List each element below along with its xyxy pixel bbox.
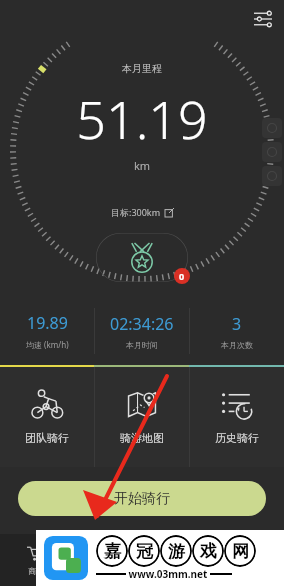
staticText: 本月次数 <box>221 340 253 350</box>
staticText: 3 <box>232 313 242 335</box>
button[interactable]: 历史骑行 <box>190 367 284 467</box>
staticText: 团队骑行 <box>25 431 69 445</box>
button[interactable]: 目标:300km <box>111 206 174 218</box>
button[interactable]: 19.89 <box>0 300 94 362</box>
staticText: 本月时间 <box>126 340 158 350</box>
staticText: 嘉 <box>104 541 121 562</box>
staticText: 历史骑行 <box>215 431 259 445</box>
staticText: 本月里程 <box>122 62 162 75</box>
staticText: 商城 <box>28 566 44 576</box>
button[interactable]: 3 <box>190 300 284 362</box>
button[interactable]: Settings <box>248 4 278 34</box>
button[interactable]: 骑游地图 <box>95 367 189 467</box>
staticText: 戏 <box>200 541 217 562</box>
staticText: 网 <box>232 541 249 562</box>
staticText: 骑游地图 <box>120 431 164 445</box>
staticText: www.03mm.net <box>126 567 210 581</box>
staticText: 0 <box>179 270 185 282</box>
button[interactable]: More <box>262 166 282 186</box>
staticText: 均速 (km/h) <box>26 339 69 350</box>
staticText: km <box>134 158 151 173</box>
staticText: 开始骑行 <box>114 490 170 508</box>
button[interactable]: 02:34:26 <box>95 300 189 362</box>
button[interactable]: 开始骑行 <box>18 481 266 516</box>
button[interactable]: 团队骑行 <box>0 367 94 467</box>
button[interactable]: Share <box>262 142 282 162</box>
staticText: 游 <box>168 541 185 562</box>
staticText: 目标:300km <box>111 206 161 218</box>
button[interactable]: 商城 <box>0 534 71 586</box>
button[interactable]: Medals <box>96 233 188 282</box>
staticText: 51.19 <box>76 83 208 154</box>
staticText: 02:34:26 <box>110 313 174 335</box>
staticText: 冠 <box>136 541 153 562</box>
button[interactable]: Edit <box>262 118 282 138</box>
staticText: 19.89 <box>27 312 68 334</box>
